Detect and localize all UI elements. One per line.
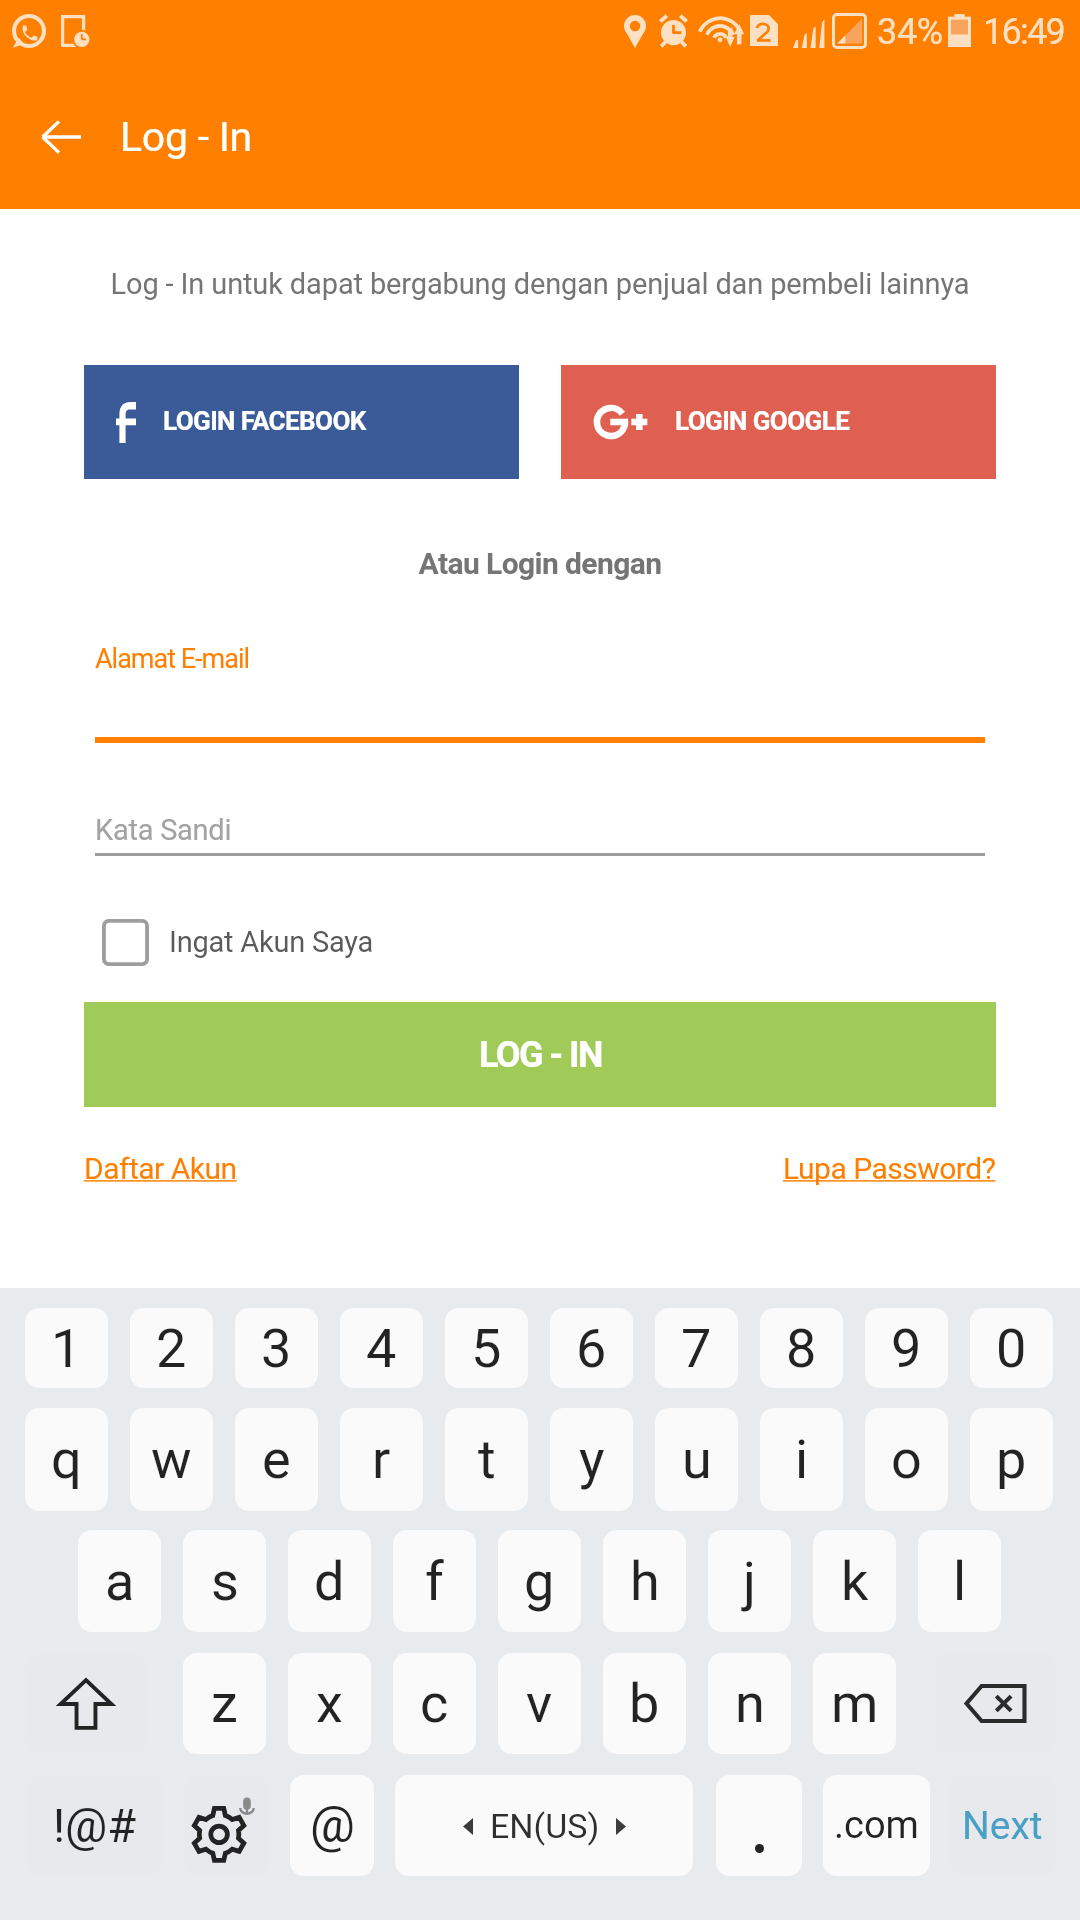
staticText: a [105, 1550, 135, 1613]
staticText: j [743, 1550, 756, 1613]
button[interactable]: !@# [27, 1775, 163, 1876]
button[interactable]: Lupa Password? [783, 1151, 996, 1186]
button[interactable]: 6 [550, 1308, 633, 1388]
button[interactable]: r [340, 1408, 423, 1511]
button[interactable]: LOGIN FACEBOOK [84, 365, 519, 479]
staticText: Log - In untuk dapat bergabung dengan pe… [0, 267, 1080, 301]
staticText: g [524, 1550, 555, 1613]
button[interactable]: 9 [865, 1308, 948, 1388]
button[interactable]: Backspace [935, 1653, 1055, 1754]
button[interactable]: p [970, 1408, 1053, 1511]
staticText: 3 [261, 1317, 292, 1380]
staticText: o [891, 1428, 922, 1491]
button[interactable]: 3 [235, 1308, 318, 1388]
staticText: y [579, 1428, 605, 1491]
staticText: m [831, 1672, 879, 1735]
button[interactable]: d [288, 1530, 371, 1632]
staticText: h [630, 1550, 660, 1613]
staticText: LOGIN FACEBOOK [163, 406, 366, 436]
staticText: e [262, 1428, 291, 1491]
button[interactable]: f [393, 1530, 476, 1632]
button[interactable]: v [498, 1653, 581, 1754]
staticText: r [372, 1428, 391, 1491]
staticText: b [629, 1672, 660, 1735]
staticText: Kata Sandi [95, 813, 232, 847]
button[interactable]: e [235, 1408, 318, 1511]
button[interactable]: t [445, 1408, 528, 1511]
button[interactable]: 2 [130, 1308, 213, 1388]
staticText: s [211, 1550, 239, 1613]
staticText: 7 [681, 1317, 712, 1380]
button[interactable]: q [25, 1408, 108, 1511]
staticText: z [211, 1672, 238, 1735]
button[interactable]: c [393, 1653, 476, 1754]
button[interactable]: x [288, 1653, 371, 1754]
button[interactable]: Settings [185, 1775, 269, 1876]
button[interactable]: .com [823, 1775, 930, 1876]
staticText: p [996, 1428, 1027, 1491]
staticText: f [425, 1550, 444, 1613]
button[interactable]: i [760, 1408, 843, 1511]
staticText: n [735, 1672, 765, 1735]
button[interactable]: 1 [25, 1308, 108, 1388]
button[interactable]: Ingat Akun Saya [95, 910, 374, 974]
button[interactable]: s [183, 1530, 266, 1632]
staticText: !@# [53, 1798, 137, 1853]
button[interactable]: @ [290, 1775, 374, 1876]
staticText: t [478, 1428, 496, 1491]
staticText: u [682, 1428, 712, 1491]
button[interactable]: h [603, 1530, 686, 1632]
button[interactable]: 8 [760, 1308, 843, 1388]
button[interactable]: g [498, 1530, 581, 1632]
button[interactable]: 4 [340, 1308, 423, 1388]
staticText: w [151, 1428, 192, 1491]
button[interactable]: Space [395, 1775, 693, 1876]
button[interactable]: y [550, 1408, 633, 1511]
button[interactable]: k [813, 1530, 896, 1632]
button[interactable]: a [78, 1530, 161, 1632]
staticText: d [314, 1550, 345, 1613]
button[interactable]: u [655, 1408, 738, 1511]
staticText: Ingat Akun Saya [169, 925, 374, 959]
button[interactable]: 5 [445, 1308, 528, 1388]
staticText: Lupa Password? [783, 1151, 996, 1186]
staticText: q [51, 1428, 82, 1491]
button[interactable]: Next [950, 1775, 1055, 1876]
button[interactable]: w [130, 1408, 213, 1511]
staticText: 4 [366, 1317, 397, 1380]
staticText: x [316, 1672, 343, 1735]
staticText: @ [310, 1796, 355, 1855]
button[interactable]: Shift [26, 1653, 146, 1754]
staticText: 34% [877, 11, 943, 53]
staticText: LOG - IN [479, 1034, 602, 1076]
button[interactable]: m [813, 1653, 896, 1754]
staticText: 8 [786, 1317, 817, 1380]
staticText: 9 [891, 1317, 922, 1380]
staticText: l [953, 1550, 967, 1613]
button[interactable]: Daftar Akun [84, 1151, 237, 1186]
button[interactable]: z [183, 1653, 266, 1754]
button[interactable]: 0 [970, 1308, 1053, 1388]
staticText: Log - In [120, 113, 252, 161]
staticText: LOGIN GOOGLE [675, 406, 850, 436]
button[interactable]: b [603, 1653, 686, 1754]
staticText: 16:49 [983, 11, 1065, 53]
button[interactable]: LOGIN GOOGLE [561, 365, 996, 479]
staticText: 5 [471, 1317, 502, 1380]
button[interactable]: o [865, 1408, 948, 1511]
button[interactable]: Back [13, 89, 109, 185]
button[interactable]: n [708, 1653, 791, 1754]
staticText: 2 [156, 1317, 187, 1380]
staticText: Alamat E-mail [95, 643, 250, 675]
staticText: Next [962, 1803, 1043, 1849]
button[interactable]: j [708, 1530, 791, 1632]
button[interactable]: LOG - IN [84, 1002, 996, 1107]
staticText: 0 [996, 1317, 1027, 1380]
button[interactable]: Period [716, 1775, 802, 1876]
staticText: v [526, 1672, 553, 1735]
staticText: EN(US) [490, 1806, 600, 1846]
button[interactable]: l [918, 1530, 1001, 1632]
staticText: .com [834, 1803, 919, 1848]
staticText: c [420, 1672, 449, 1735]
button[interactable]: 7 [655, 1308, 738, 1388]
